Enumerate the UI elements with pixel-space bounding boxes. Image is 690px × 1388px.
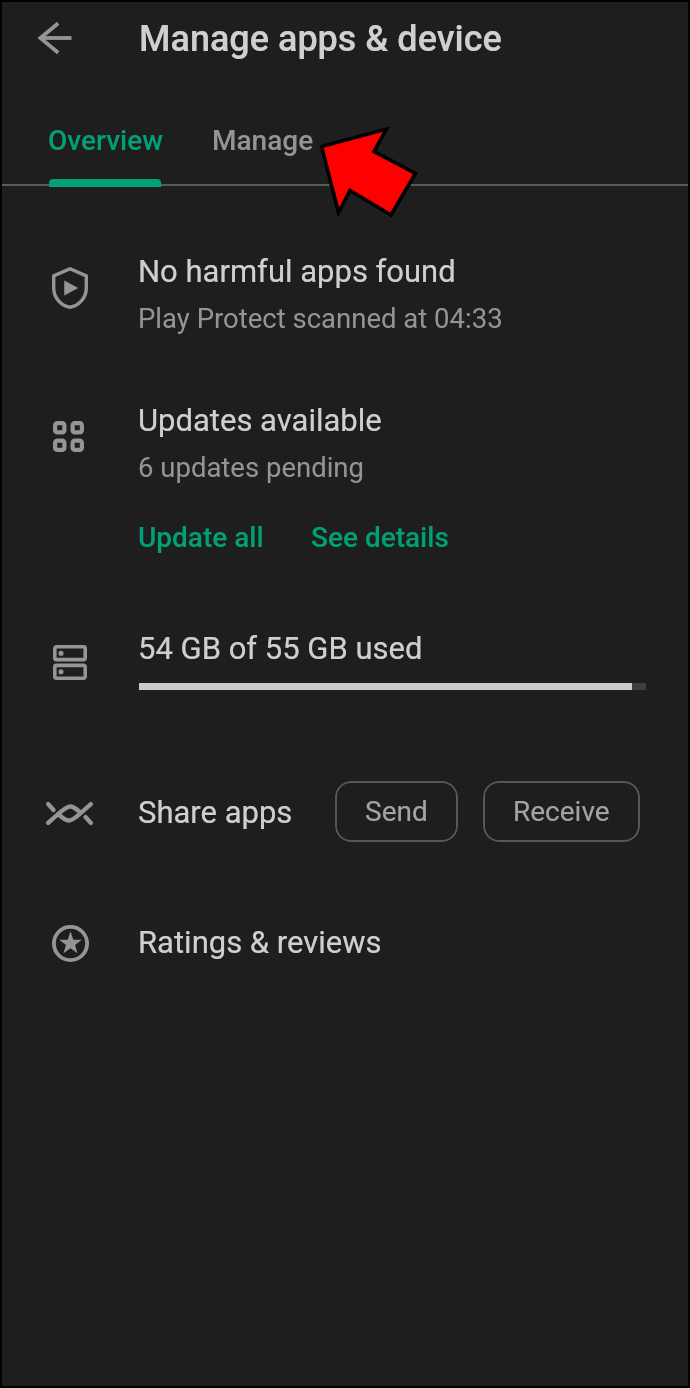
staticText: Receive (513, 795, 610, 828)
staticText: Manage (212, 124, 314, 157)
staticText: Play Protect scanned at 04:33 (138, 302, 503, 334)
staticText: Share apps (138, 794, 293, 830)
button[interactable]: See details (299, 512, 461, 562)
button[interactable]: 54 GB of 55 GB used (2, 612, 688, 708)
staticText: Updates available (138, 402, 382, 438)
button[interactable]: Back (39, 22, 73, 54)
button[interactable]: Send (335, 781, 458, 842)
button[interactable]: Receive (483, 781, 640, 842)
staticText: Ratings & reviews (138, 924, 382, 960)
staticText: Update all (138, 521, 264, 554)
staticText: See details (311, 521, 449, 554)
button[interactable]: Ratings & reviews (2, 902, 688, 988)
button[interactable]: No harmful apps found (2, 236, 688, 348)
staticText: Overview (48, 124, 163, 157)
button[interactable]: Manage (198, 110, 328, 180)
button[interactable]: Overview (34, 110, 182, 180)
staticText: 6 updates pending (138, 451, 364, 483)
staticText: Send (365, 795, 428, 828)
staticText: Manage apps & device (139, 18, 502, 60)
button[interactable]: Updates available (2, 385, 688, 497)
button[interactable]: Update all (126, 512, 276, 562)
staticText: 54 GB of 55 GB used (138, 630, 423, 666)
staticText: No harmful apps found (138, 253, 456, 289)
